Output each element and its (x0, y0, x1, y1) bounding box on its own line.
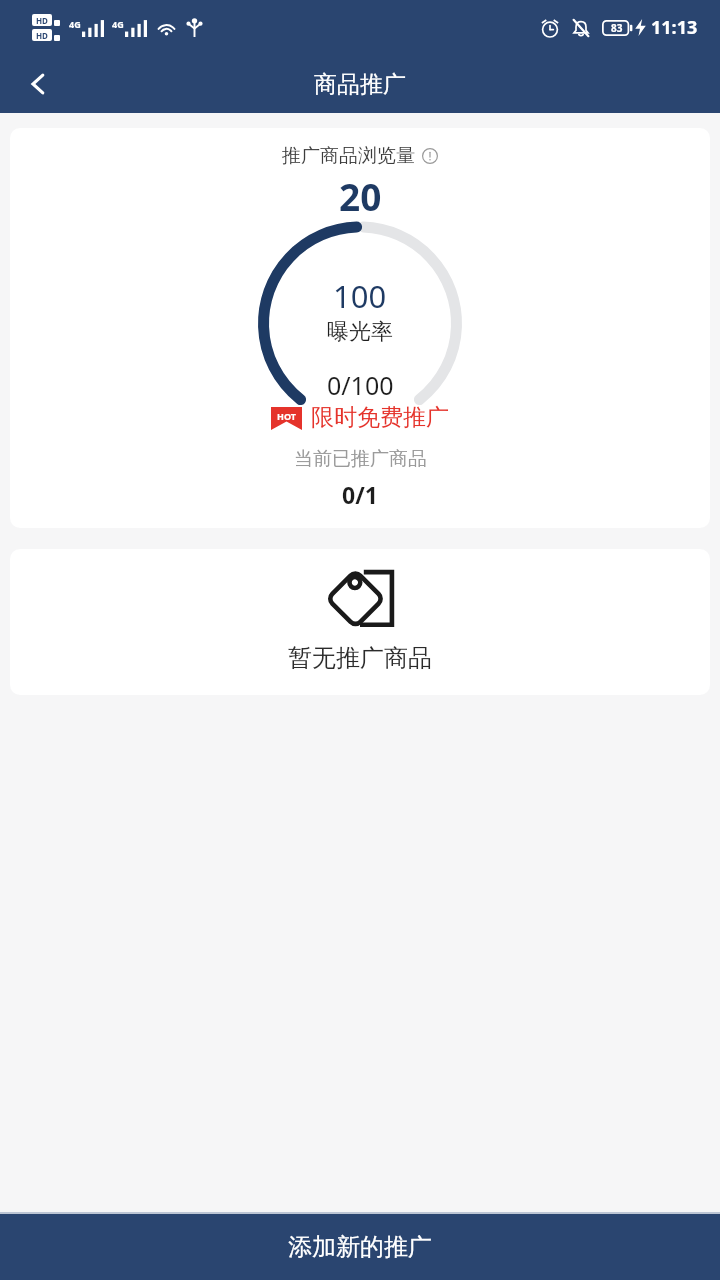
staticText: 11:13 (651, 15, 698, 40)
staticText: 0/100 (327, 368, 394, 399)
staticText: 商品推广 (314, 70, 406, 99)
staticText: HD (36, 15, 48, 26)
staticText: 4G (69, 18, 81, 30)
staticText: 推广商品浏览量 (282, 144, 415, 168)
staticText: 曝光率 (327, 318, 393, 346)
staticText: 暂无推广商品 (288, 643, 432, 673)
button[interactable]: 返回 (10, 56, 66, 112)
staticText: 83 (611, 21, 623, 35)
staticText: 当前已推广商品 (294, 447, 427, 471)
staticText: 限时免费推广 (311, 403, 449, 432)
button[interactable]: 推广商品浏览量 (10, 128, 710, 528)
button[interactable]: 添加新的推广 (0, 1214, 720, 1280)
staticText: 添加新的推广 (288, 1232, 432, 1262)
staticText: 100 (333, 275, 387, 317)
staticText: HD (36, 30, 48, 41)
staticText: 0/1 (342, 479, 378, 510)
staticText: HOT (277, 410, 296, 422)
staticText: 4G (112, 18, 124, 30)
staticText: 20 (339, 171, 382, 221)
button[interactable]: 暂无推广商品 (10, 549, 710, 695)
